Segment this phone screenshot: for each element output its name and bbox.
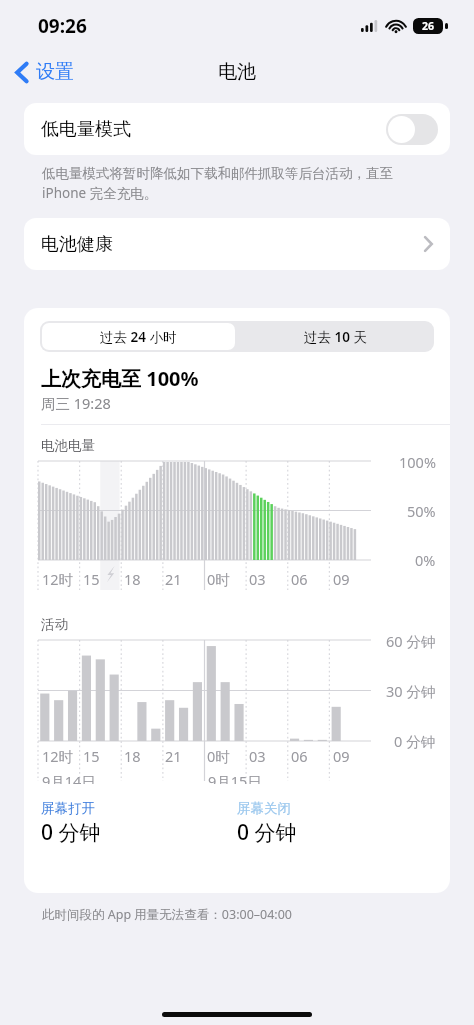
staticText: 过去 10 天 xyxy=(304,328,367,346)
staticText: 9月15日 xyxy=(208,771,262,784)
button[interactable]: 低电量模式 xyxy=(24,103,450,155)
staticText: 06 xyxy=(291,569,308,589)
staticText: 0 分钟 xyxy=(394,731,436,751)
staticText: 活动 xyxy=(41,616,68,633)
staticText: 09:26 xyxy=(38,13,87,39)
staticText: 30 分钟 xyxy=(386,681,436,701)
staticText: 0时 xyxy=(207,746,230,766)
staticText: 06 xyxy=(291,746,308,766)
staticText: 15 xyxy=(83,746,100,766)
staticText: 屏幕打开 xyxy=(41,800,95,817)
staticText: 50% xyxy=(407,501,436,521)
staticText: 12时 xyxy=(42,569,74,589)
button[interactable]: 过去 10 天 xyxy=(237,321,434,352)
staticText: 15 xyxy=(83,569,100,589)
staticText: 电池 xyxy=(218,60,256,84)
staticText: 9月14日 xyxy=(42,771,96,784)
staticText: 21 xyxy=(165,746,182,766)
staticText: 09 xyxy=(333,569,350,589)
staticText: 03 xyxy=(249,746,266,766)
staticText: 0时 xyxy=(207,569,230,589)
button[interactable]: 设置 xyxy=(8,55,82,89)
staticText: 18 xyxy=(124,746,141,766)
staticText: 0 分钟 xyxy=(237,818,297,847)
staticText: 03 xyxy=(249,569,266,589)
staticText: 60 分钟 xyxy=(386,631,436,651)
staticText: 12时 xyxy=(42,746,74,766)
staticText: 18 xyxy=(124,569,141,589)
staticText: 电池电量 xyxy=(41,437,95,454)
staticText: 0 分钟 xyxy=(41,818,101,847)
staticText: 09 xyxy=(333,746,350,766)
staticText: 0% xyxy=(415,550,436,570)
staticText: 过去 24 小时 xyxy=(100,328,177,346)
button[interactable]: 电池健康 xyxy=(24,218,450,270)
button[interactable]: 过去 24 小时 xyxy=(42,323,235,350)
staticText: 屏幕关闭 xyxy=(237,800,291,817)
button[interactable]: Low Power Mode xyxy=(386,114,438,145)
staticText: 周三 19:28 xyxy=(41,393,111,413)
staticText: 低电量模式将暂时降低如下载和邮件抓取等后台活动，直至 iPhone 完全充电。 xyxy=(42,165,452,202)
staticText: 电池健康 xyxy=(41,233,113,256)
staticText: 低电量模式 xyxy=(41,118,131,141)
staticText: 上次充电至 100% xyxy=(41,365,199,392)
staticText: 26 xyxy=(422,19,435,33)
staticText: 100% xyxy=(399,452,436,472)
staticText: 21 xyxy=(165,569,182,589)
staticText: 此时间段的 App 用量无法查看：03:00–04:00 xyxy=(42,906,474,923)
staticText: 设置 xyxy=(36,60,74,84)
